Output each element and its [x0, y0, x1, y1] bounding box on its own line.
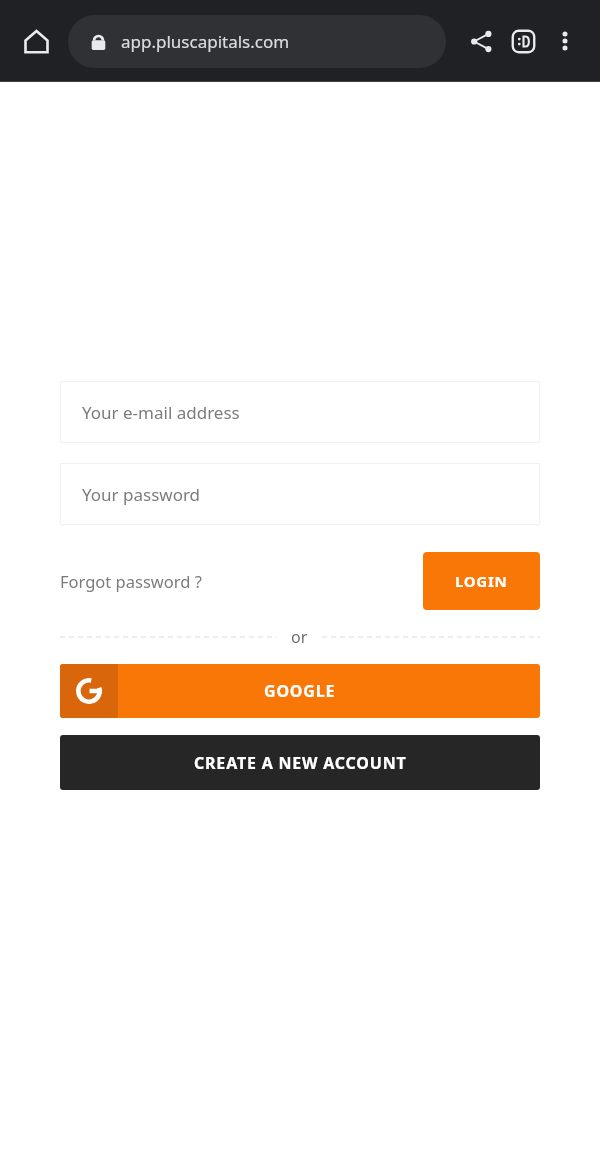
button[interactable]: GOOGLE — [60, 664, 540, 718]
button[interactable]: CREATE A NEW ACCOUNT — [60, 735, 540, 790]
button[interactable]: LOGIN — [423, 552, 540, 610]
staticText: Your e-mail address — [82, 401, 240, 424]
staticText: Your password — [82, 483, 201, 506]
button[interactable]: Your password — [60, 463, 540, 525]
button[interactable]: app.pluscapitals.com — [68, 15, 446, 68]
staticText: GOOGLE — [264, 680, 336, 702]
button[interactable]: Tabs — [502, 20, 544, 62]
button[interactable]: Your e-mail address — [60, 381, 540, 443]
button[interactable]: Home — [14, 19, 58, 63]
button[interactable]: Share — [460, 20, 502, 62]
button[interactable]: Forgot password ? — [60, 552, 423, 610]
staticText: LOGIN — [455, 571, 508, 591]
staticText: app.pluscapitals.com — [121, 30, 290, 53]
staticText: CREATE A NEW ACCOUNT — [194, 752, 407, 774]
staticText: or — [291, 626, 308, 648]
staticText: Forgot password ? — [60, 570, 202, 592]
button[interactable]: More options — [544, 20, 586, 62]
